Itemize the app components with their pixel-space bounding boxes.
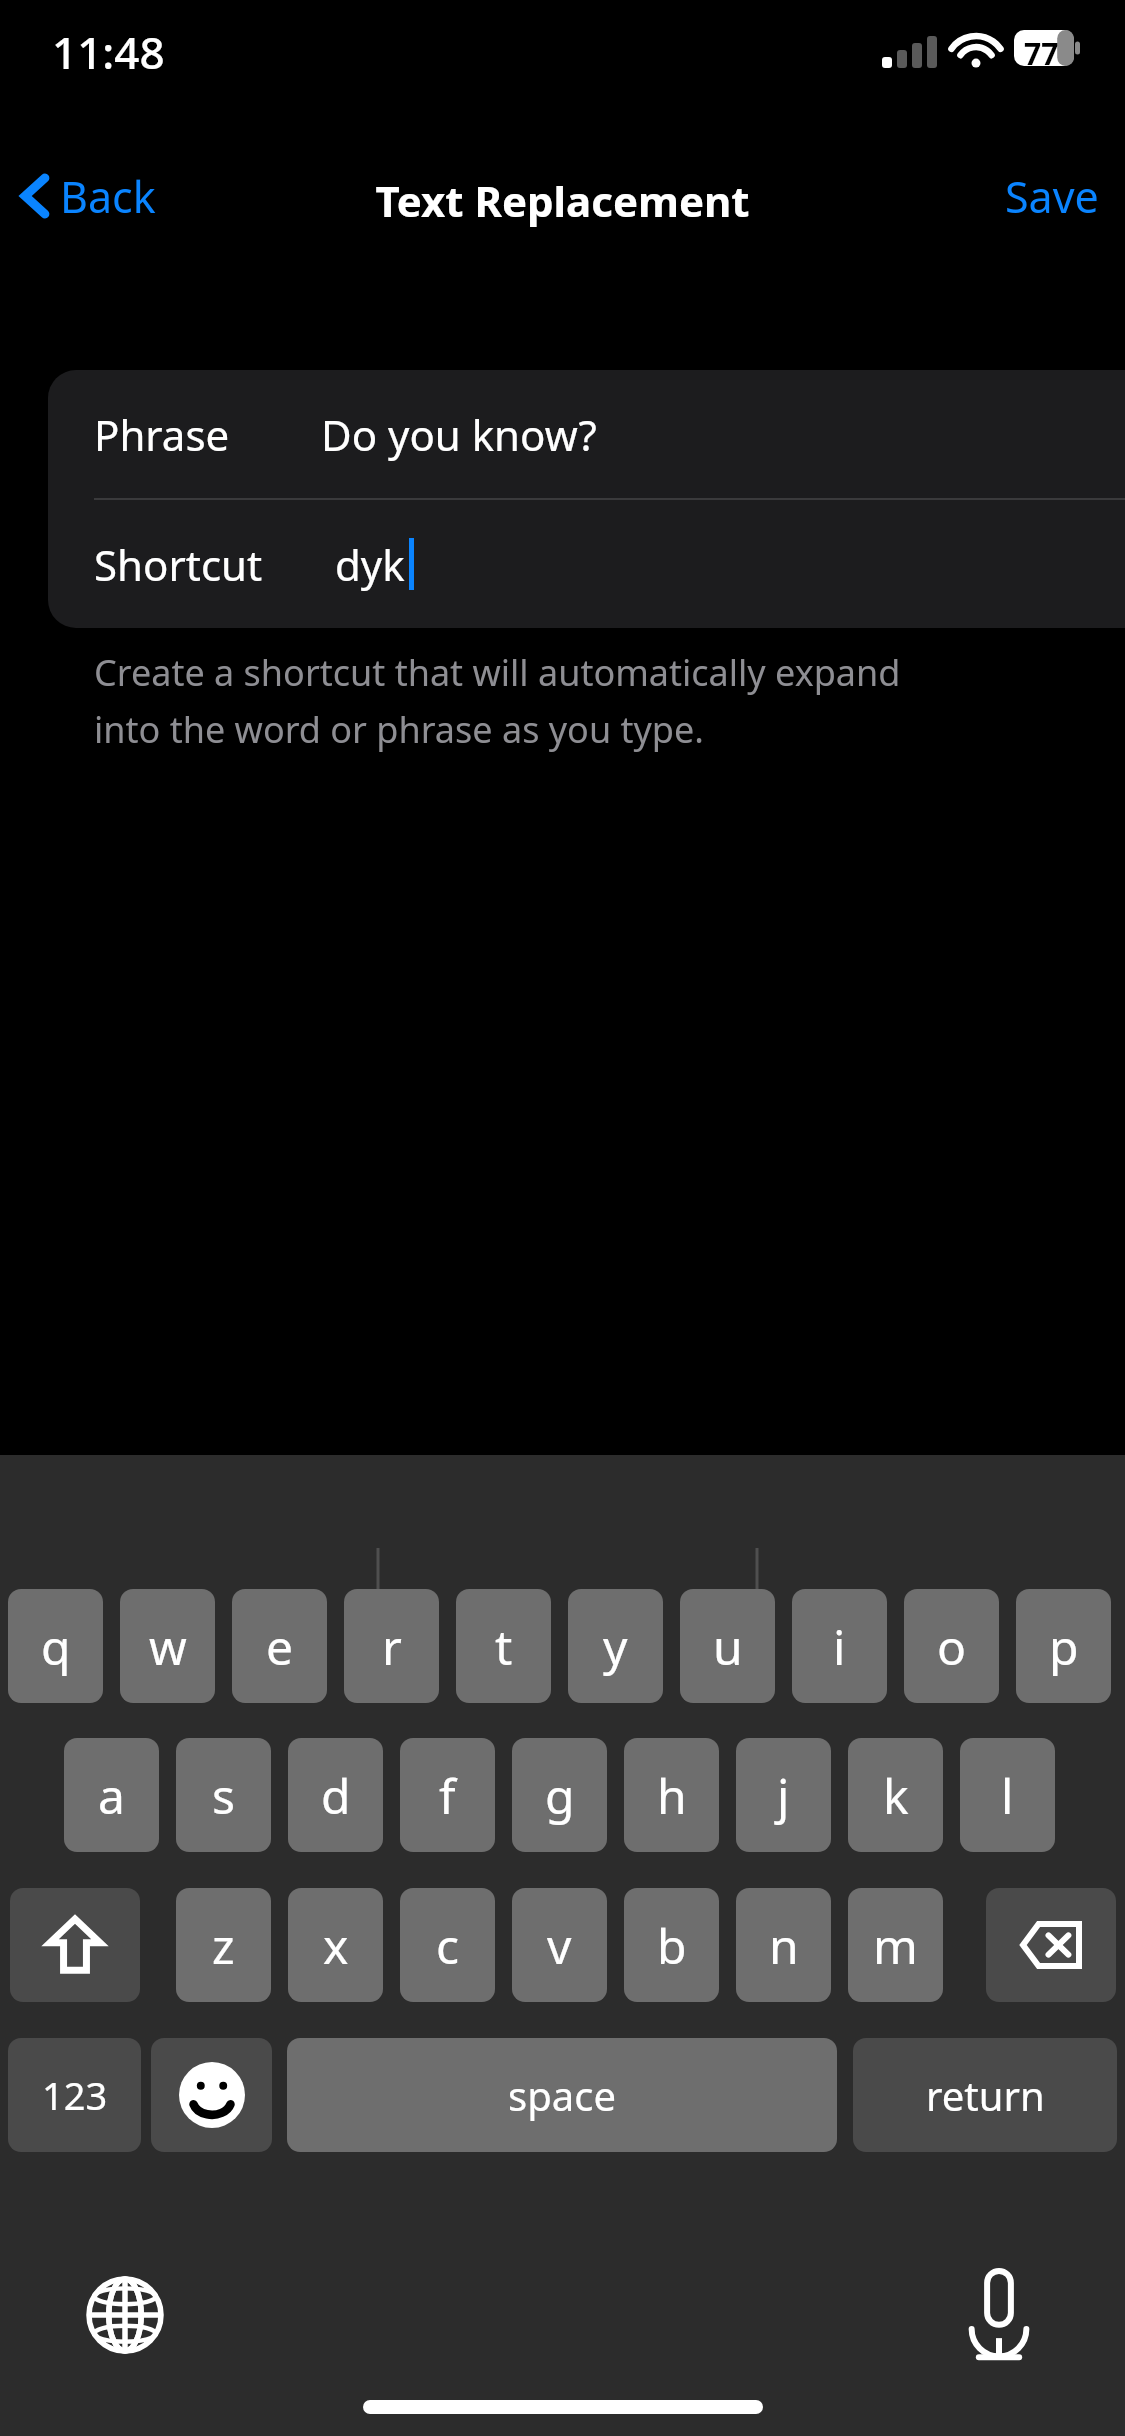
- button[interactable]: y: [568, 1589, 663, 1703]
- staticText: Shortcut: [94, 536, 263, 593]
- button[interactable]: u: [680, 1589, 775, 1703]
- staticText: c: [436, 1913, 460, 1978]
- button[interactable]: Shift: [10, 1888, 140, 2002]
- staticText: s: [212, 1763, 235, 1828]
- staticText: x: [323, 1913, 349, 1978]
- staticText: d: [321, 1763, 351, 1828]
- button[interactable]: k: [848, 1738, 943, 1852]
- button[interactable]: e: [232, 1589, 327, 1703]
- button[interactable]: o: [904, 1589, 999, 1703]
- staticText: q: [41, 1614, 71, 1679]
- button[interactable]: p: [1016, 1589, 1111, 1703]
- staticText: u: [713, 1614, 743, 1679]
- staticText: a: [98, 1763, 125, 1828]
- button[interactable]: Emoji: [151, 2038, 272, 2152]
- button[interactable]: Shortcut: [48, 500, 1125, 628]
- button[interactable]: Dictate: [951, 2262, 1047, 2372]
- button[interactable]: 123: [8, 2038, 141, 2152]
- staticText: Save: [1005, 167, 1099, 226]
- staticText: k: [883, 1763, 909, 1828]
- staticText: Text Replacement: [0, 172, 1125, 229]
- button[interactable]: l: [960, 1738, 1055, 1852]
- button[interactable]: d: [288, 1738, 383, 1852]
- button[interactable]: a: [64, 1738, 159, 1852]
- button[interactable]: n: [736, 1888, 831, 2002]
- staticText: 123: [42, 2069, 108, 2121]
- staticText: return: [926, 2068, 1045, 2122]
- staticText: into the word or phrase as you type.: [94, 705, 704, 754]
- staticText: dyk: [335, 536, 405, 593]
- button[interactable]: i: [792, 1589, 887, 1703]
- staticText: w: [149, 1614, 187, 1679]
- staticText: 77: [1024, 33, 1059, 74]
- button[interactable]: Backspace: [986, 1888, 1116, 2002]
- button[interactable]: f: [400, 1738, 495, 1852]
- staticText: Back: [60, 167, 156, 226]
- button[interactable]: z: [176, 1888, 271, 2002]
- button[interactable]: h: [624, 1738, 719, 1852]
- staticText: l: [1001, 1763, 1014, 1828]
- button[interactable]: t: [456, 1589, 551, 1703]
- staticText: space: [508, 2068, 616, 2122]
- staticText: t: [495, 1614, 513, 1679]
- staticText: Do you know?: [321, 406, 597, 463]
- staticText: j: [777, 1763, 790, 1828]
- staticText: p: [1049, 1614, 1079, 1679]
- staticText: b: [657, 1913, 687, 1978]
- staticText: y: [603, 1614, 628, 1679]
- staticText: r: [382, 1614, 402, 1679]
- button[interactable]: space: [287, 2038, 837, 2152]
- staticText: z: [212, 1913, 235, 1978]
- staticText: m: [873, 1913, 918, 1978]
- staticText: e: [266, 1614, 294, 1679]
- button[interactable]: x: [288, 1888, 383, 2002]
- button[interactable]: w: [120, 1589, 215, 1703]
- button[interactable]: g: [512, 1738, 607, 1852]
- staticText: g: [545, 1763, 575, 1828]
- staticText: Create a shortcut that will automaticall…: [94, 648, 901, 697]
- staticText: v: [547, 1913, 572, 1978]
- staticText: f: [439, 1763, 456, 1828]
- button[interactable]: s: [176, 1738, 271, 1852]
- button[interactable]: m: [848, 1888, 943, 2002]
- button[interactable]: Save: [979, 160, 1125, 232]
- button[interactable]: b: [624, 1888, 719, 2002]
- button[interactable]: v: [512, 1888, 607, 2002]
- button[interactable]: Phrase: [48, 370, 1125, 498]
- staticText: i: [833, 1614, 846, 1679]
- button[interactable]: return: [853, 2038, 1117, 2152]
- button[interactable]: Back: [10, 160, 168, 232]
- button[interactable]: j: [736, 1738, 831, 1852]
- staticText: h: [657, 1763, 687, 1828]
- button[interactable]: r: [344, 1589, 439, 1703]
- staticText: Phrase: [94, 406, 230, 463]
- button[interactable]: c: [400, 1888, 495, 2002]
- button[interactable]: Switch keyboard: [78, 2268, 172, 2362]
- staticText: o: [937, 1614, 967, 1679]
- staticText: n: [769, 1913, 799, 1978]
- staticText: 11:48: [52, 22, 165, 82]
- button[interactable]: q: [8, 1589, 103, 1703]
